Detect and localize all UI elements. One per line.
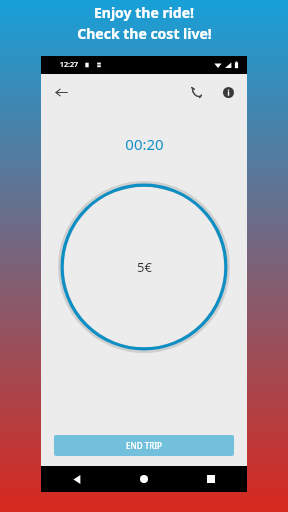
button[interactable]: END TRIP xyxy=(54,435,234,456)
staticText: 00:20 xyxy=(125,134,164,154)
button[interactable]: Information xyxy=(217,81,239,103)
staticText: Enjoy the ride! xyxy=(94,3,194,22)
button[interactable]: Home xyxy=(134,469,154,489)
button[interactable]: Recent apps xyxy=(201,469,221,489)
staticText: 12:27 xyxy=(60,60,78,70)
staticText: 5€ xyxy=(137,258,152,276)
button[interactable]: Back xyxy=(49,80,73,104)
button[interactable]: Call driver xyxy=(185,81,207,103)
button[interactable]: Back xyxy=(67,469,87,489)
staticText: END TRIP xyxy=(126,440,162,451)
staticText: Check the cost live! xyxy=(77,24,212,43)
